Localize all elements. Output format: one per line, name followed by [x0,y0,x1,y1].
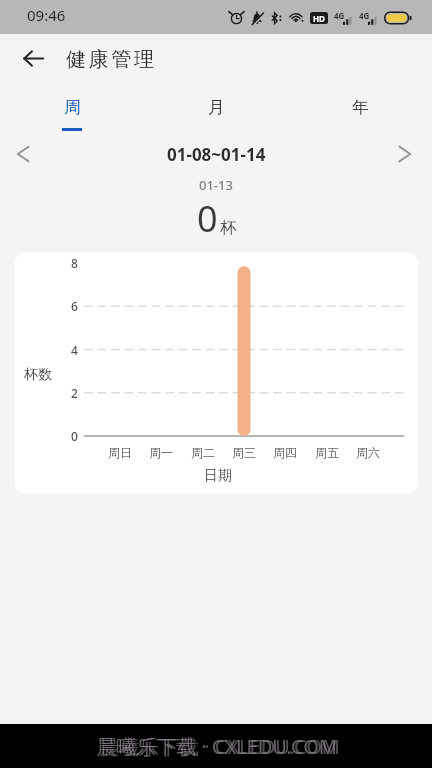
staticText: 周日 [108,445,132,460]
staticText: HD [313,13,325,24]
staticText: 健康管理 [66,47,157,72]
staticText: 0 [197,194,218,243]
staticText: 杯数 [24,366,52,384]
staticText: 周五 [315,445,339,460]
button[interactable]: Previous week [3,134,43,174]
button[interactable]: Back [13,38,53,78]
staticText: 4G [359,10,370,21]
button[interactable]: 月 [168,86,264,138]
staticText: 周四 [273,445,297,460]
staticText: 月 [208,97,225,118]
staticText: 年 [352,97,369,118]
staticText: 周二 [191,445,215,460]
staticText: 6 [71,298,78,314]
button[interactable]: 周 [24,86,120,138]
staticText: 01-08~01-14 [167,143,266,166]
staticText: 8 [71,255,78,271]
staticText: 01-13 [199,176,233,194]
staticText: 2 [71,385,78,401]
staticText: 0 [71,428,78,444]
staticText: 周三 [232,445,256,460]
button[interactable]: 年 [312,86,408,138]
staticText: 09:46 [27,5,66,25]
staticText: 晨曦乐下载 · CXLEDU.COM [99,733,340,760]
staticText: 日期 [204,467,232,485]
staticText: 杯 [220,218,236,238]
staticText: 周六 [356,445,380,460]
staticText: 4 [71,342,78,358]
staticText: 周一 [149,445,173,460]
staticText: 晨曦乐下载 · CXLEDU.COM [96,733,337,760]
button[interactable]: Next week [385,134,425,174]
staticText: 周 [64,97,81,118]
staticText: 4G [334,10,345,21]
